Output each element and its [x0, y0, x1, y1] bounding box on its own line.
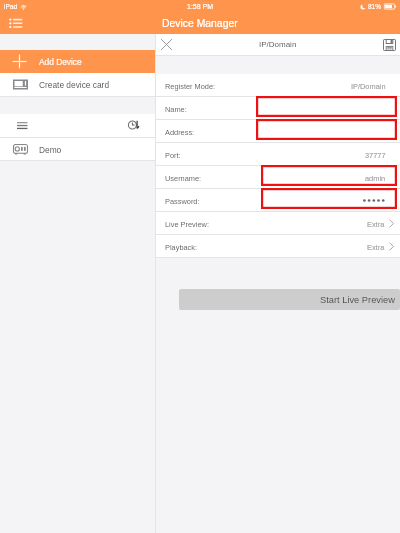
button[interactable]: Username: [156, 166, 400, 189]
button[interactable]: Password: [156, 189, 400, 212]
button[interactable]: Address: [156, 120, 400, 143]
staticText: admin [365, 174, 386, 182]
button[interactable]: Start Live Preview [179, 289, 400, 310]
staticText: 1:58 PM [187, 3, 214, 11]
staticText: iPad [4, 3, 18, 10]
staticText: 37777 [365, 151, 386, 159]
staticText: Address: [165, 128, 195, 136]
staticText: Name: [165, 105, 187, 113]
button[interactable]: History [128, 114, 146, 137]
staticText: Extra [367, 243, 385, 251]
staticText: Playback: [165, 243, 198, 251]
button[interactable]: List [17, 114, 39, 137]
button[interactable]: Menu [9, 13, 27, 34]
staticText: Register Mode: [165, 82, 216, 90]
button[interactable]: Name: [156, 97, 400, 120]
staticText: Add Device [39, 57, 82, 66]
staticText: IP/Domain [351, 82, 386, 90]
staticText: Device Manager [162, 18, 238, 30]
button[interactable]: Create device card [0, 73, 155, 96]
staticText: Extra [367, 220, 385, 228]
button[interactable]: Live Preview: [156, 212, 400, 235]
button[interactable]: Port: [156, 143, 400, 166]
button[interactable]: Playback: [156, 235, 400, 258]
staticText: 81% [368, 3, 382, 10]
staticText: IP/Domain [259, 40, 297, 49]
button[interactable]: Save [376, 34, 396, 55]
staticText: Username: [165, 174, 202, 182]
button[interactable]: Close [161, 34, 181, 55]
staticText: Demo [39, 145, 62, 154]
staticText: Port: [165, 151, 181, 159]
button[interactable]: Demo [0, 138, 155, 160]
button[interactable]: Register Mode: [156, 74, 400, 97]
staticText: Live Preview: [165, 220, 209, 228]
staticText: Start Live Preview [320, 295, 395, 305]
staticText: Create device card [39, 80, 110, 89]
button[interactable]: Add Device [0, 50, 155, 73]
staticText: Password: [165, 197, 200, 205]
